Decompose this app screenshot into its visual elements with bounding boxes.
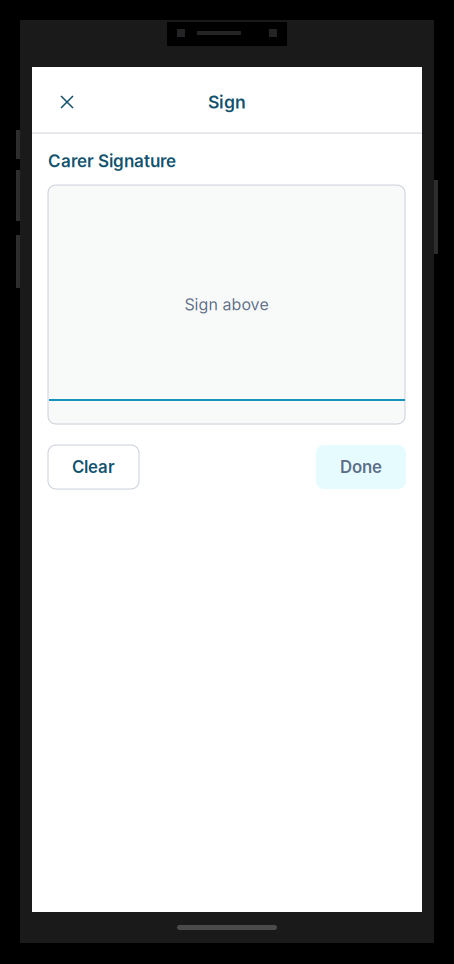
staticText: Sign above (184, 295, 268, 314)
button[interactable]: Done (316, 445, 406, 489)
button[interactable]: Close (47, 82, 87, 122)
staticText: Done (340, 457, 382, 477)
staticText: Clear (72, 457, 115, 477)
staticText: Carer Signature (48, 151, 176, 171)
button[interactable]: Clear (48, 445, 139, 489)
staticText: Sign (208, 91, 246, 113)
